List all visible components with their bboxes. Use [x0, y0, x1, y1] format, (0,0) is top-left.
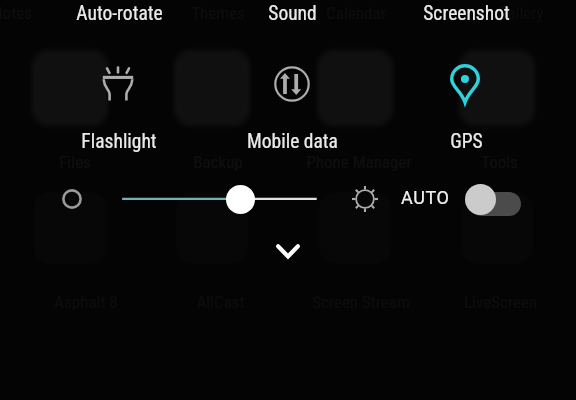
- staticText: AUTO: [401, 187, 450, 208]
- staticText: Mobile data: [247, 130, 338, 153]
- button[interactable]: Expand quick settings: [272, 240, 304, 262]
- button[interactable]: Flashlight: [48, 48, 190, 144]
- staticText: Auto-rotate: [76, 2, 163, 25]
- button[interactable]: Brightness low: [62, 189, 82, 209]
- staticText: Flashlight: [81, 130, 157, 153]
- button[interactable]: GPS: [395, 48, 537, 144]
- staticText: Files: [59, 152, 91, 172]
- staticText: Sound: [268, 2, 317, 25]
- staticText: Phone Manager: [306, 152, 412, 172]
- button[interactable]: Mobile data: [221, 48, 363, 144]
- staticText: GPS: [450, 130, 483, 153]
- button[interactable]: Brightness high: [352, 186, 378, 212]
- button[interactable]: Auto brightness toggle: [465, 182, 522, 215]
- staticText: Gallery: [497, 3, 544, 23]
- staticText: Backup: [193, 152, 243, 172]
- staticText: Screenshot: [423, 2, 510, 25]
- button[interactable]: AUTO: [401, 187, 450, 208]
- staticText: Tools: [481, 152, 518, 172]
